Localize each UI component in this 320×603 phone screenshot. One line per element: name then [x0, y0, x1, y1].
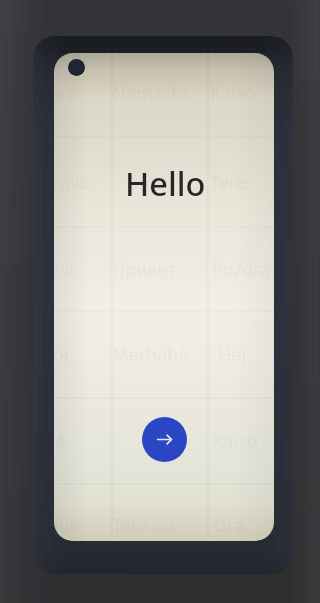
- staticText: Gra: [214, 513, 245, 538]
- staticText: Hello: [54, 513, 80, 538]
- button[interactable]: Next: [142, 417, 187, 462]
- staticText: Hello: [125, 161, 206, 205]
- staticText: Đura: [54, 81, 78, 106]
- staticText: Namaste: [112, 81, 188, 106]
- staticText: Tere ou: [112, 513, 175, 538]
- staticText: Kaixo: [212, 429, 258, 454]
- staticText: Kaixo: [210, 81, 256, 106]
- staticText: ahoj: [54, 342, 69, 367]
- staticText: Pozdrav: [212, 257, 274, 282]
- staticText: שלום: [54, 257, 74, 278]
- staticText: Zdravo: [54, 170, 91, 195]
